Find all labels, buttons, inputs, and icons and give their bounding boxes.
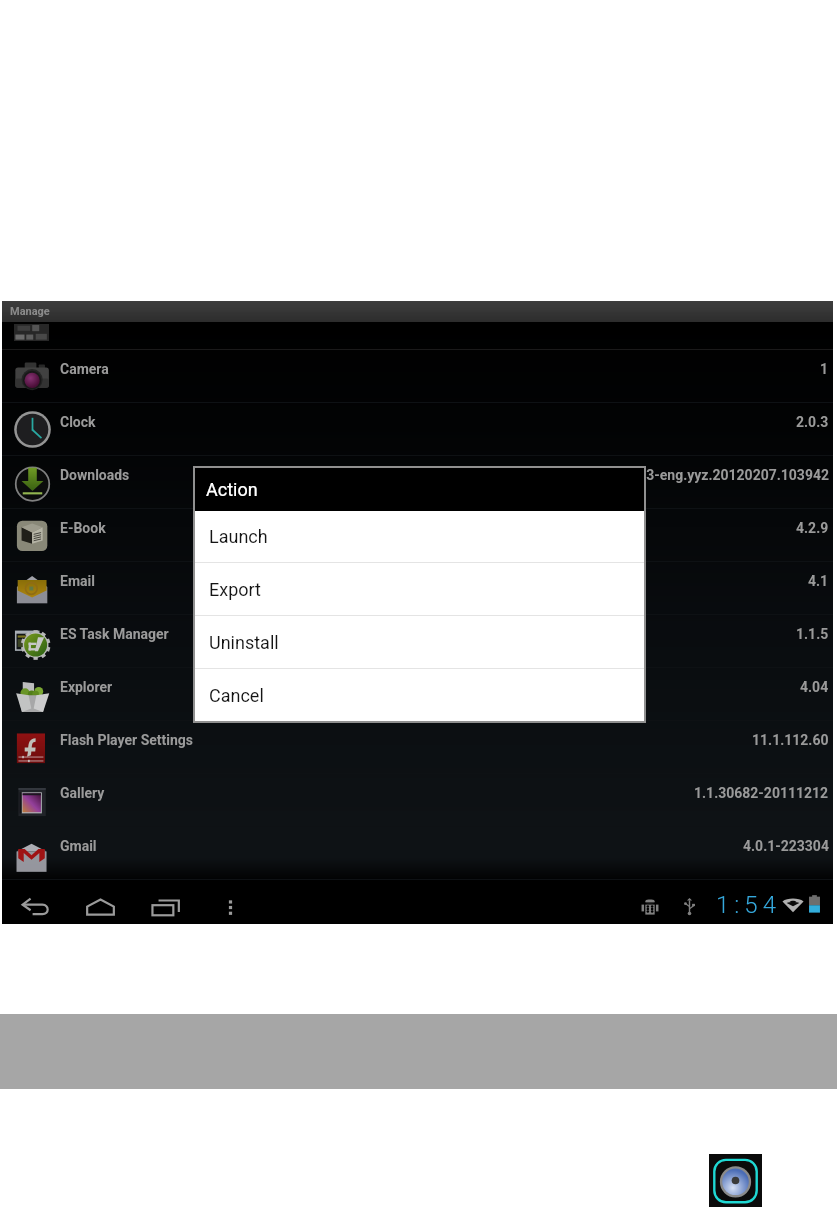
button[interactable]: Gallery xyxy=(2,774,833,826)
staticText: Downloads xyxy=(60,467,130,483)
staticText: Action xyxy=(206,479,258,500)
staticText: ES Task Manager xyxy=(60,626,169,642)
button[interactable]: Downloads xyxy=(2,456,833,508)
staticText: Manage xyxy=(10,305,50,318)
staticText: 4.2.9 xyxy=(796,520,829,536)
staticText: Camera xyxy=(60,361,109,377)
button[interactable]: Home xyxy=(68,885,133,929)
button[interactable]: Export xyxy=(195,563,644,615)
button[interactable]: Manage xyxy=(2,301,833,322)
staticText: E-Book xyxy=(60,520,106,536)
button[interactable]: Back xyxy=(3,885,68,929)
button[interactable]: Email xyxy=(2,562,833,614)
button[interactable]: Camera xyxy=(2,350,833,402)
button[interactable]: Flash Player Settings xyxy=(2,721,833,773)
staticText: 2.0.3 xyxy=(796,414,829,430)
staticText: 4.1 xyxy=(808,573,829,589)
staticText: 4.0.1-223304 xyxy=(743,838,829,854)
staticText: 4.0.3-eng.yyz.20120207.103942 xyxy=(622,467,829,483)
staticText: Gallery xyxy=(60,785,105,801)
staticText: Uninstall xyxy=(209,632,279,653)
button[interactable]: Recent apps xyxy=(133,885,198,929)
staticText: Explorer xyxy=(60,679,113,695)
button[interactable]: ES Task Manager xyxy=(2,615,833,667)
staticText: 4.04 xyxy=(800,679,829,695)
button[interactable]: More options xyxy=(198,885,263,929)
button[interactable]: Launch xyxy=(195,511,644,562)
button[interactable]: Explorer xyxy=(2,668,833,720)
staticText: Export xyxy=(209,579,261,600)
staticText: Flash Player Settings xyxy=(60,732,194,748)
button[interactable]: Uninstall xyxy=(195,616,644,668)
staticText: Launch xyxy=(209,526,268,547)
staticText: Email xyxy=(60,573,95,589)
staticText: 1.1.5 xyxy=(796,626,829,642)
staticText: Cancel xyxy=(209,685,264,706)
staticText: Gmail xyxy=(60,838,97,854)
button[interactable]: Clock xyxy=(2,403,833,455)
staticText: 1:54 xyxy=(716,891,781,919)
staticText: 1.1.30682-20111212 xyxy=(694,785,829,801)
staticText: 1 xyxy=(820,361,829,377)
button[interactable]: Gmail xyxy=(2,827,833,879)
button[interactable]: E-Book xyxy=(2,509,833,561)
staticText: 11.1.112.60 xyxy=(752,732,829,748)
button[interactable]: Audio settings xyxy=(709,1154,762,1207)
staticText: Clock xyxy=(60,414,96,430)
button[interactable]: Cancel xyxy=(195,669,644,721)
